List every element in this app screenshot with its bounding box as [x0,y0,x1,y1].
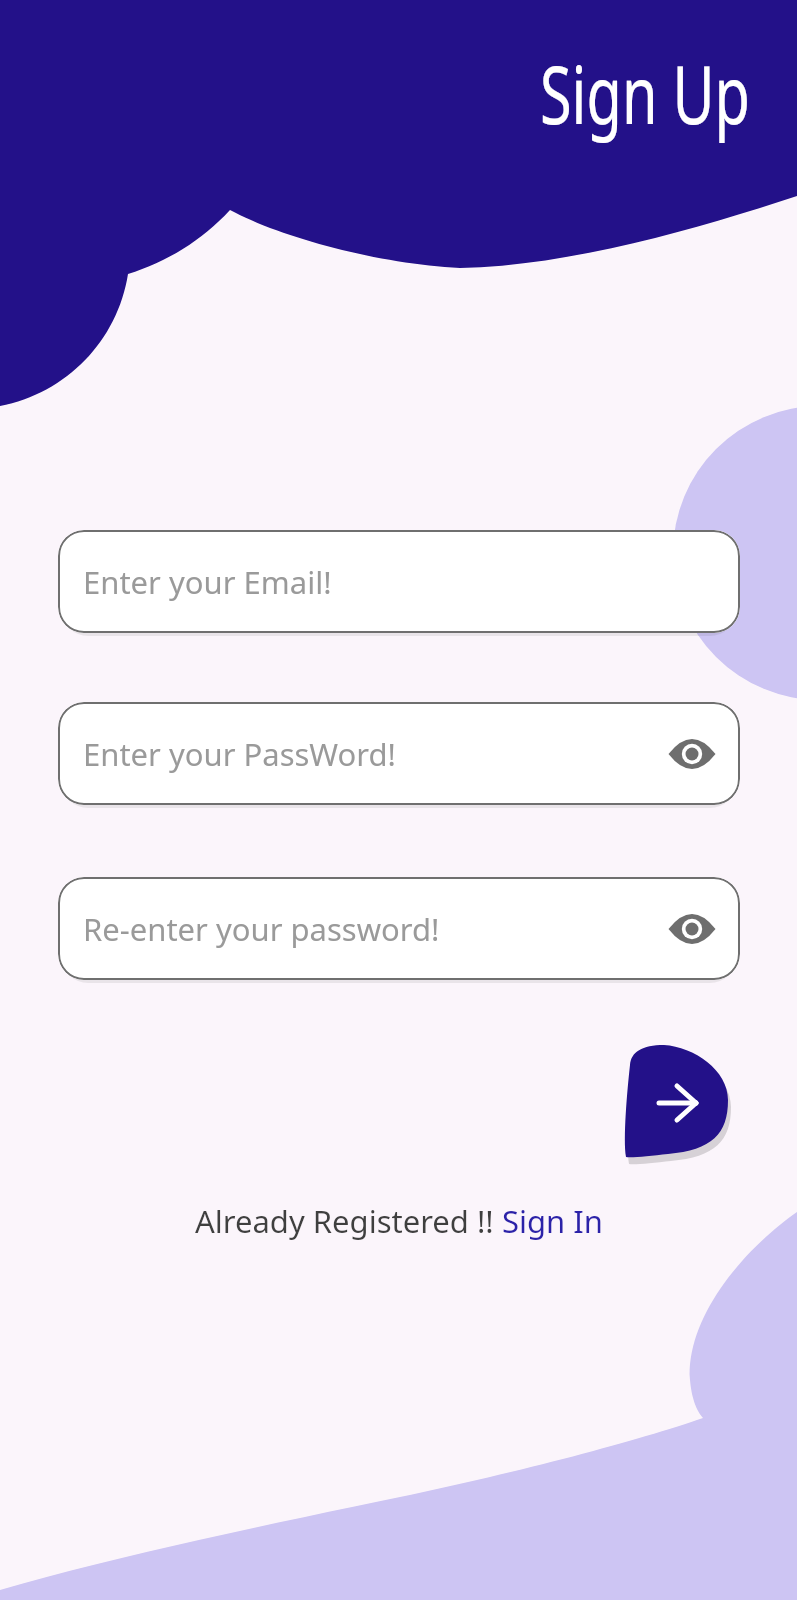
staticText: Re-enter your password! [83,908,440,950]
staticText: Enter your Email! [83,561,332,603]
button[interactable]: Enter your PassWord! [58,702,740,805]
button[interactable]: Re-enter your password! [58,877,740,980]
staticText: Enter your PassWord! [83,733,396,775]
staticText: Sign Up [540,38,750,147]
button[interactable] [625,1045,729,1157]
staticText: Already Registered !! [195,1200,502,1242]
button[interactable]: Enter your Email! [58,530,740,633]
button[interactable]: Sign In [502,1200,603,1242]
